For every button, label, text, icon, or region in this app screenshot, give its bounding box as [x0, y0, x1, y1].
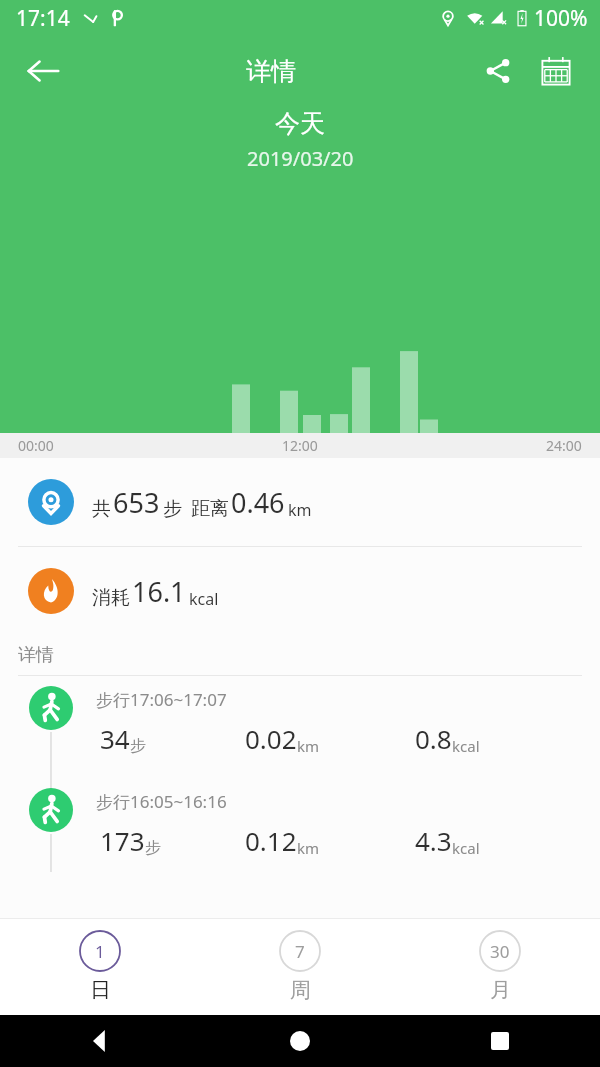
button[interactable]: 步行17:06~17:07	[0, 676, 600, 778]
button[interactable]: 消耗	[0, 547, 600, 635]
staticText: km	[297, 838, 320, 858]
staticText: 0.46	[231, 484, 285, 521]
staticText: 30	[490, 940, 510, 963]
staticText: 步行16:05~16:16	[96, 790, 227, 813]
staticText: kcal	[452, 736, 480, 756]
button[interactable]: 步行16:05~16:16	[0, 778, 600, 880]
staticText: 24:00	[546, 436, 582, 455]
staticText: 100%	[534, 4, 588, 33]
button[interactable]: 7	[200, 918, 400, 1015]
staticText: 步	[163, 497, 182, 521]
staticText: 00:00	[18, 436, 54, 455]
staticText: kcal	[189, 588, 219, 610]
staticText: 步	[145, 838, 161, 858]
staticText: 1	[95, 940, 105, 963]
staticText: 0.8	[415, 721, 452, 756]
staticText: 日	[90, 977, 111, 1003]
staticText: 详情	[18, 644, 54, 667]
staticText: 12:00	[282, 436, 318, 455]
staticText: 7	[295, 940, 305, 963]
button[interactable]: 30	[400, 918, 600, 1015]
staticText: km	[288, 499, 312, 521]
staticText: 周	[290, 977, 311, 1003]
button[interactable]: Calendar	[534, 49, 578, 93]
staticText: 4.3	[415, 823, 452, 858]
staticText: 详情	[246, 56, 296, 87]
button[interactable]: Share	[476, 49, 520, 93]
staticText: 月	[490, 977, 511, 1003]
button[interactable]: Back	[0, 1015, 200, 1067]
staticText: kcal	[452, 838, 480, 858]
staticText: 共	[92, 497, 111, 521]
staticText: 消耗	[92, 586, 130, 610]
button[interactable]: 1	[0, 918, 200, 1015]
staticText: 34	[100, 721, 130, 756]
staticText: 16.1	[132, 573, 186, 610]
staticText: 步	[130, 736, 146, 756]
button[interactable]: 共	[0, 458, 600, 546]
staticText: 0.12	[245, 823, 297, 858]
button[interactable]: Home	[200, 1015, 400, 1067]
staticText: 0.02	[245, 721, 297, 756]
staticText: 17:14	[16, 4, 70, 33]
staticText: km	[297, 736, 320, 756]
staticText: 今天	[275, 108, 325, 139]
staticText: 步行17:06~17:07	[96, 688, 227, 711]
staticText: 173	[100, 823, 145, 858]
button[interactable]: Recent apps	[400, 1015, 600, 1067]
button[interactable]: Back	[20, 48, 66, 94]
staticText: 距离	[191, 497, 229, 521]
staticText: 653	[113, 484, 160, 521]
staticText: 2019/03/20	[247, 145, 354, 172]
